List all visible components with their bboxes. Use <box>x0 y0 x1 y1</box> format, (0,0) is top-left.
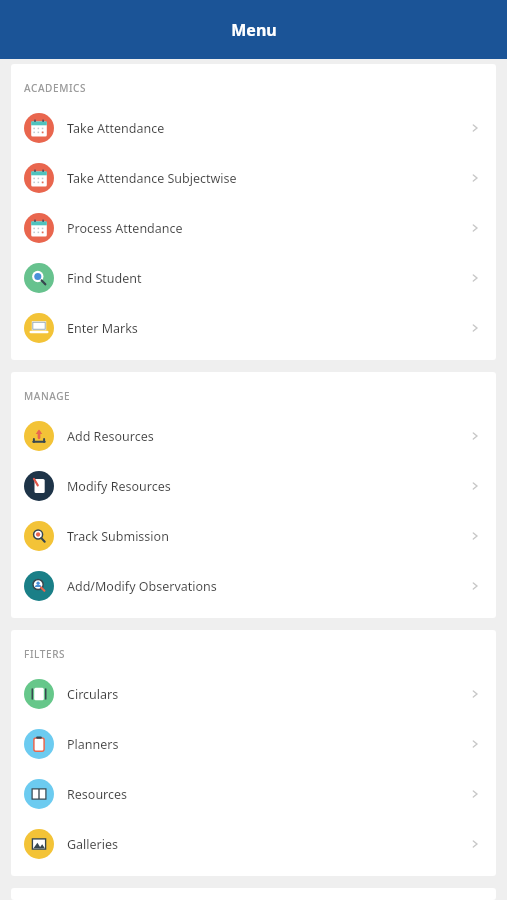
button[interactable]: Circulars <box>11 669 496 719</box>
button[interactable]: Track Submission <box>11 511 496 561</box>
button[interactable]: Resources <box>11 769 496 819</box>
button[interactable]: Add Resources <box>11 411 496 461</box>
staticText: Galleries <box>67 836 119 853</box>
staticText: Track Submission <box>67 528 169 545</box>
staticText: Resources <box>67 786 128 803</box>
button[interactable]: Process Attendance <box>11 203 496 253</box>
button[interactable]: Find Student <box>11 253 496 303</box>
staticText: Menu <box>231 19 277 41</box>
staticText: Add/Modify Observations <box>67 578 217 595</box>
button[interactable]: Planners <box>11 719 496 769</box>
staticText: Modify Resources <box>67 478 171 495</box>
staticText: Find Student <box>67 270 142 287</box>
staticText: MANAGE <box>24 389 71 403</box>
button[interactable]: Take Attendance <box>11 103 496 153</box>
staticText: Planners <box>67 736 119 753</box>
staticText: Process Attendance <box>67 220 183 237</box>
button[interactable]: Modify Resources <box>11 461 496 511</box>
button[interactable]: Take Attendance Subjectwise <box>11 153 496 203</box>
button[interactable]: Add/Modify Observations <box>11 561 496 611</box>
staticText: FILTERS <box>24 647 66 661</box>
staticText: Enter Marks <box>67 320 138 337</box>
staticText: Add Resources <box>67 428 154 445</box>
button[interactable]: Enter Marks <box>11 303 496 353</box>
staticText: Take Attendance <box>67 120 165 137</box>
staticText: Circulars <box>67 686 119 703</box>
staticText: ACADEMICS <box>24 81 87 95</box>
staticText: Take Attendance Subjectwise <box>67 170 237 187</box>
button[interactable]: Galleries <box>11 819 496 869</box>
